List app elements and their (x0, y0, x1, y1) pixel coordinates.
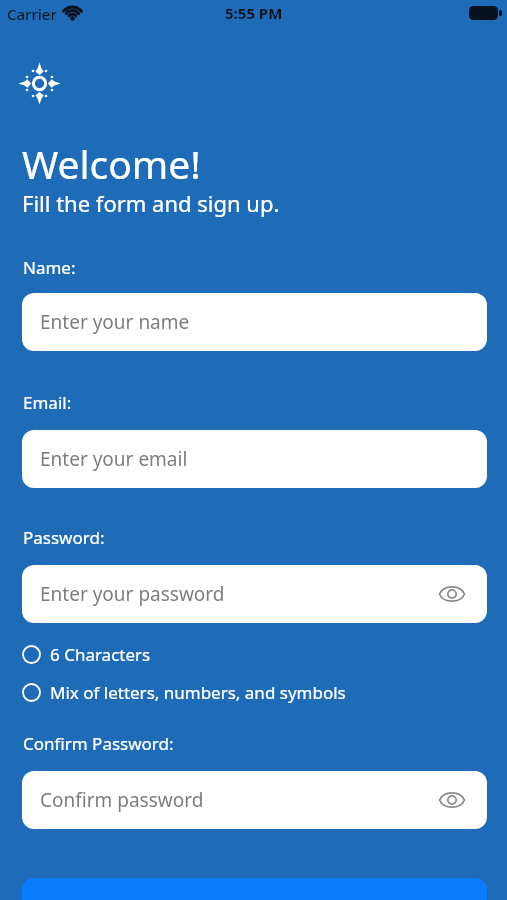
button[interactable]: Confirm password (22, 771, 487, 829)
button[interactable]: Enter your email (22, 430, 487, 488)
button[interactable]: Mix of letters, numbers, and symbols (22, 681, 346, 704)
button[interactable] (439, 581, 465, 607)
staticText: 6 Characters (50, 643, 151, 666)
staticText: Carrier (7, 4, 57, 24)
button[interactable]: Enter your name (22, 293, 487, 351)
staticText: Fill the form and sign up. (22, 188, 280, 218)
staticText: 5:55 PM (225, 3, 283, 23)
staticText: Enter your email (40, 446, 188, 472)
staticText: Enter your name (40, 309, 190, 335)
staticText: Confirm Password: (23, 732, 174, 755)
button[interactable]: Sign Up (22, 878, 487, 900)
button[interactable]: 6 Characters (22, 643, 151, 666)
staticText: Password: (23, 526, 105, 549)
staticText: Name: (23, 256, 76, 279)
staticText: Confirm password (40, 787, 204, 813)
staticText: Mix of letters, numbers, and symbols (50, 681, 346, 704)
staticText: Welcome! (22, 137, 201, 190)
staticText: Email: (23, 391, 72, 414)
staticText: Enter your password (40, 581, 225, 607)
button[interactable] (439, 787, 465, 813)
button[interactable]: Enter your password (22, 565, 487, 623)
